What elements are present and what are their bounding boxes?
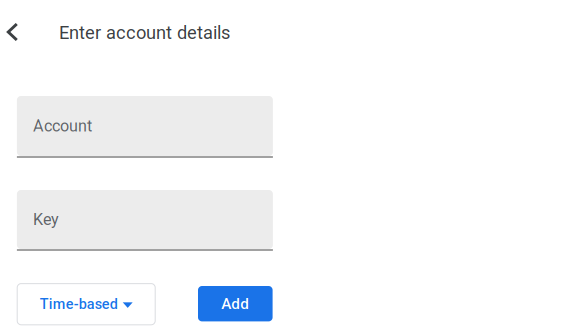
button[interactable]: Back [0,12,32,52]
staticText: Enter account details [59,22,230,43]
staticText: Key [33,210,59,229]
staticText: Account [33,116,92,135]
staticText: Time-based [40,296,118,313]
button[interactable]: Key [17,190,273,251]
button[interactable]: Add [198,286,273,321]
button[interactable]: Account [17,96,273,158]
staticText: Add [221,295,249,313]
button[interactable]: Time-based [17,284,155,325]
